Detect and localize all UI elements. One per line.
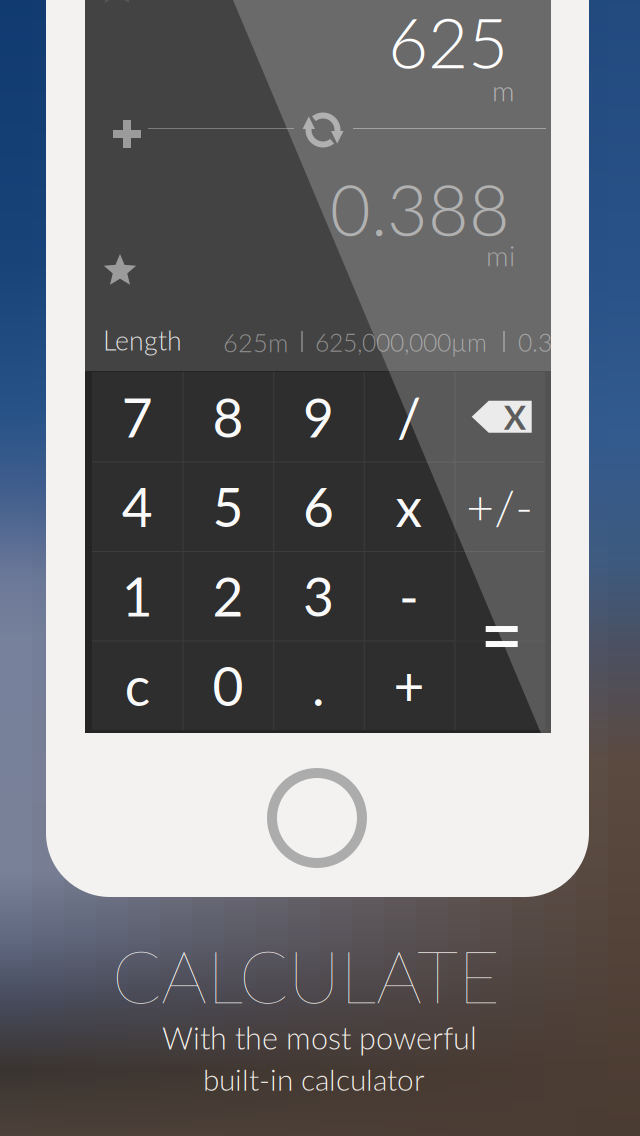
- staticText: 0: [212, 653, 243, 717]
- staticText: 625,000,000µm: [315, 327, 487, 357]
- staticText: Length: [103, 324, 182, 356]
- button[interactable]: 4: [92, 461, 183, 551]
- staticText: m: [492, 73, 515, 107]
- button[interactable]: Home: [0, 0, 640, 1136]
- button[interactable]: 8: [183, 372, 273, 461]
- staticText: 6: [303, 474, 334, 538]
- button[interactable]: +/-: [454, 461, 545, 551]
- staticText: -: [399, 564, 419, 628]
- staticText: CALCULATE: [112, 932, 500, 1019]
- staticText: 1: [122, 564, 153, 628]
- staticText: 3: [303, 564, 334, 628]
- staticText: 7: [122, 385, 153, 449]
- button[interactable]: x: [364, 461, 454, 551]
- staticText: 2: [212, 564, 243, 628]
- button[interactable]: Favourite: [85, 0, 551, 733]
- button[interactable]: Equals: [85, 0, 176, 179]
- staticText: 625m: [223, 327, 288, 358]
- staticText: X: [504, 397, 526, 437]
- button[interactable]: 2: [183, 551, 273, 640]
- staticText: With the most powerful: [162, 1019, 477, 1056]
- button[interactable]: 5: [183, 461, 273, 551]
- staticText: +: [394, 653, 425, 717]
- button[interactable]: c: [92, 640, 183, 730]
- staticText: .: [312, 653, 325, 717]
- button[interactable]: 7: [92, 372, 183, 461]
- staticText: 0.388: [330, 167, 510, 251]
- staticText: 8: [212, 385, 243, 449]
- staticText: 625: [388, 0, 508, 83]
- button[interactable]: 6: [273, 461, 364, 551]
- button[interactable]: 3: [273, 551, 364, 640]
- button[interactable]: 9: [273, 372, 364, 461]
- staticText: mi: [486, 238, 515, 272]
- staticText: built-in calculator: [203, 1061, 425, 1097]
- button[interactable]: .: [273, 640, 364, 730]
- staticText: c: [125, 653, 150, 717]
- button[interactable]: +: [364, 640, 454, 730]
- staticText: /: [397, 385, 421, 449]
- staticText: x: [396, 474, 423, 538]
- staticText: 4: [122, 474, 153, 538]
- button[interactable]: /: [364, 372, 454, 461]
- button[interactable]: 1: [92, 551, 183, 640]
- staticText: 5: [212, 474, 243, 538]
- button[interactable]: Swap units: [85, 0, 551, 733]
- button[interactable]: 0: [183, 640, 273, 730]
- button[interactable]: Backspace: [85, 0, 551, 733]
- button[interactable]: -: [364, 551, 454, 640]
- staticText: 0.3: [518, 327, 552, 357]
- staticText: 9: [303, 385, 334, 449]
- staticText: +/-: [466, 477, 533, 535]
